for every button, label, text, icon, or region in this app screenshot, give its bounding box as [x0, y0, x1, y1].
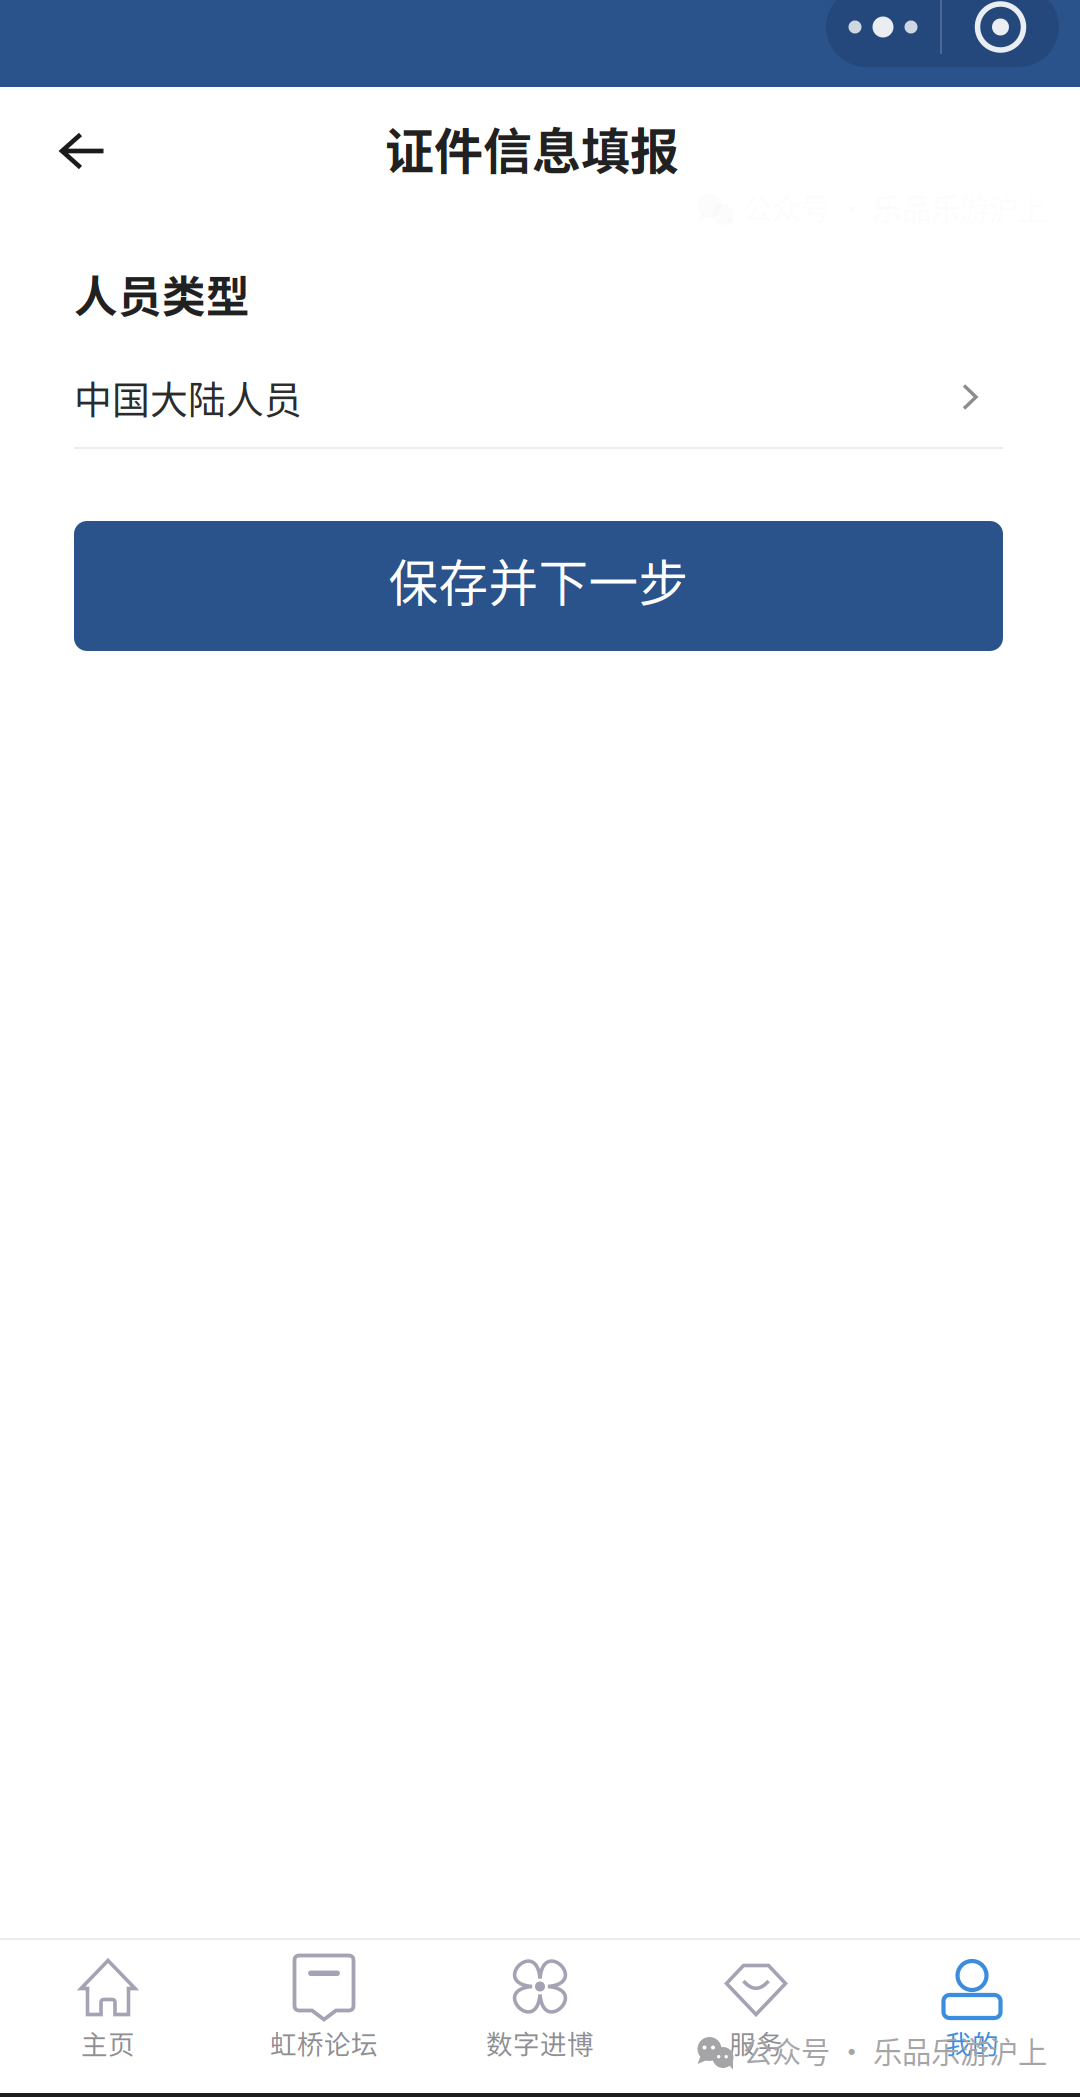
- button[interactable]: 虹桥论坛: [216, 1939, 432, 2093]
- staticText: 证件信息填报: [385, 112, 679, 183]
- staticText: 服务: [729, 2023, 783, 2062]
- staticText: 我的: [945, 2023, 999, 2062]
- button[interactable]: 返回: [0, 100, 135, 196]
- staticText: 数字进博: [486, 2023, 594, 2062]
- button[interactable]: 服务: [648, 1939, 864, 2093]
- button[interactable]: 保存并下一步: [74, 521, 1003, 651]
- button[interactable]: 中国大陆人员: [74, 347, 1003, 449]
- button[interactable]: 主页: [0, 1939, 216, 2093]
- staticText: 主页: [81, 2023, 135, 2062]
- staticText: 保存并下一步: [388, 544, 688, 616]
- staticText: 人员类型: [74, 262, 250, 325]
- staticText: 中国大陆人员: [74, 370, 302, 424]
- button[interactable]: 我的: [864, 1939, 1080, 2093]
- staticText: 公众号 · 乐品乐游沪上: [743, 2029, 1047, 2071]
- staticText: 虹桥论坛: [270, 2023, 378, 2062]
- button[interactable]: 数字进博: [432, 1939, 648, 2093]
